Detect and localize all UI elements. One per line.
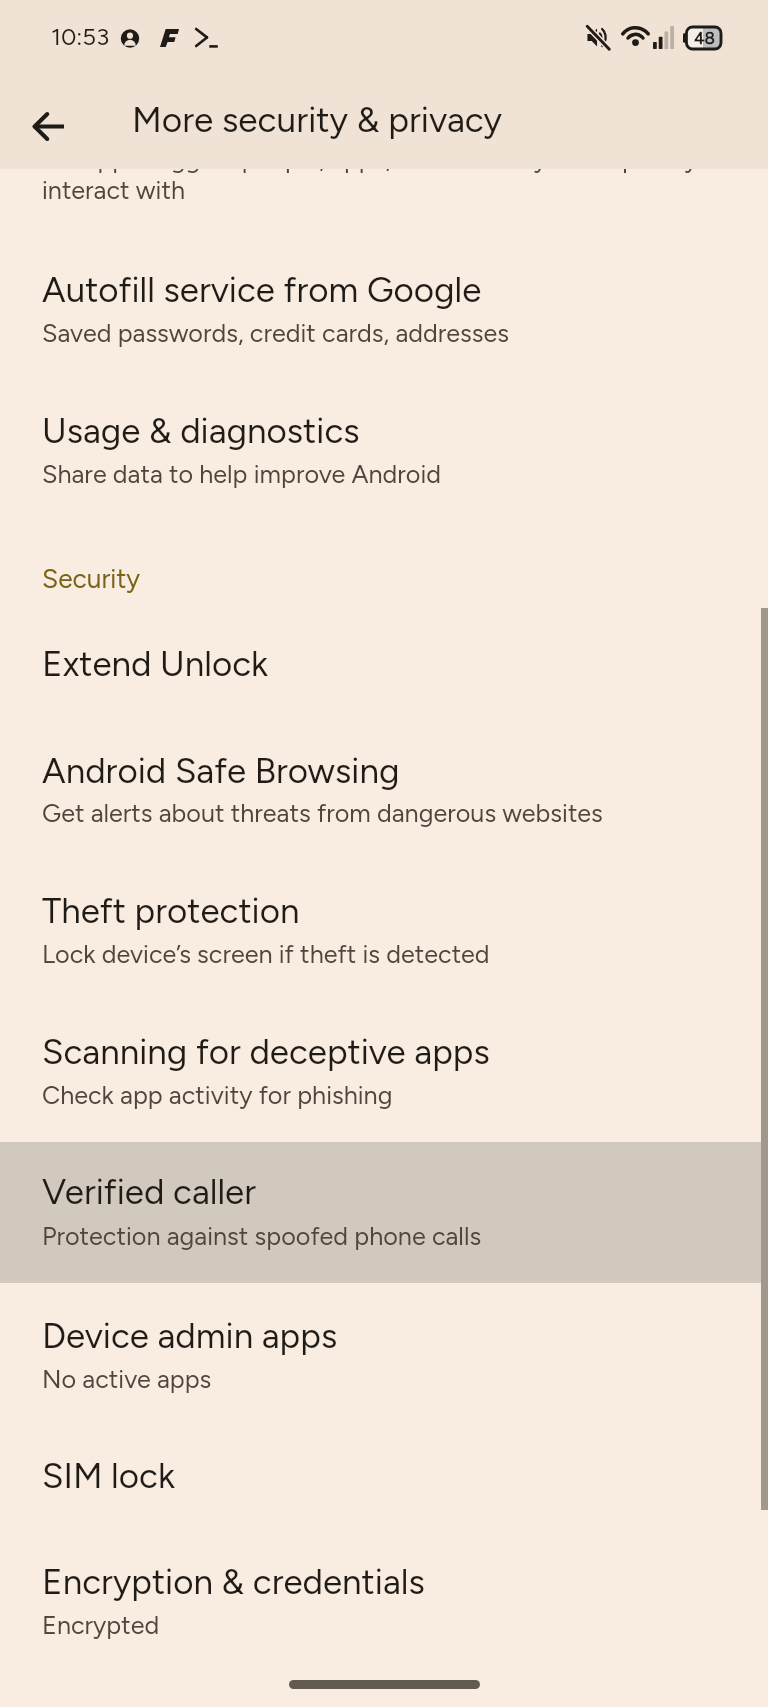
staticText: Verified caller <box>42 1171 256 1213</box>
button[interactable]: Usage & diagnostics <box>0 371 768 511</box>
staticText: SIM lock <box>42 1455 175 1497</box>
other: Battery 48 percent <box>683 27 721 49</box>
staticText: Android Safe Browsing <box>42 750 400 792</box>
other: Wi-Fi <box>620 27 651 48</box>
button[interactable]: Theft protection <box>0 874 768 1014</box>
other: Mobile signal <box>653 26 674 49</box>
staticText: Extend Unlock <box>42 643 269 685</box>
staticText: Saved passwords, credit cards, addresses <box>42 318 510 348</box>
staticText: Share data to help improve Android <box>42 459 442 489</box>
staticText: Security <box>42 563 141 595</box>
button[interactable]: SIM lock <box>0 1423 768 1530</box>
staticText: Encrypted <box>42 1610 160 1640</box>
staticText: Scanning for deceptive apps <box>42 1031 490 1073</box>
staticText: interact with <box>42 175 186 205</box>
other: Ringer muted <box>586 25 610 50</box>
staticText: 48 <box>694 28 715 48</box>
staticText: More security & privacy <box>132 99 502 141</box>
staticText: Protection against spoofed phone calls <box>42 1221 482 1251</box>
staticText: Encryption & credentials <box>42 1561 425 1603</box>
button[interactable]: Verified caller <box>0 1142 768 1283</box>
staticText: Lock device’s screen if theft is detecte… <box>42 939 490 969</box>
button[interactable]: Device admin apps <box>0 1283 768 1423</box>
staticText: Theft protection <box>42 890 300 932</box>
staticText: Check app activity for phishing <box>42 1080 393 1110</box>
button[interactable]: Encryption & credentials <box>0 1530 768 1670</box>
staticText: Get alerts about threats from dangerous … <box>42 798 603 828</box>
button[interactable]: Navigate up <box>18 96 78 156</box>
button[interactable]: Android Safe Browsing <box>0 734 768 874</box>
staticText: Usage & diagnostics <box>42 410 360 452</box>
staticText: Autofill service from Google <box>42 269 482 311</box>
button[interactable]: Let apps suggest people, apps, and actio… <box>0 120 768 231</box>
staticText: No active apps <box>42 1364 212 1394</box>
staticText: Device admin apps <box>42 1315 338 1357</box>
staticText: Let apps suggest people, apps, and actio… <box>42 144 698 174</box>
button[interactable]: Autofill service from Google <box>0 231 768 371</box>
button[interactable]: Extend Unlock <box>0 628 768 734</box>
staticText: 10:53 <box>51 22 110 51</box>
button[interactable]: Scanning for deceptive apps <box>0 1014 768 1142</box>
